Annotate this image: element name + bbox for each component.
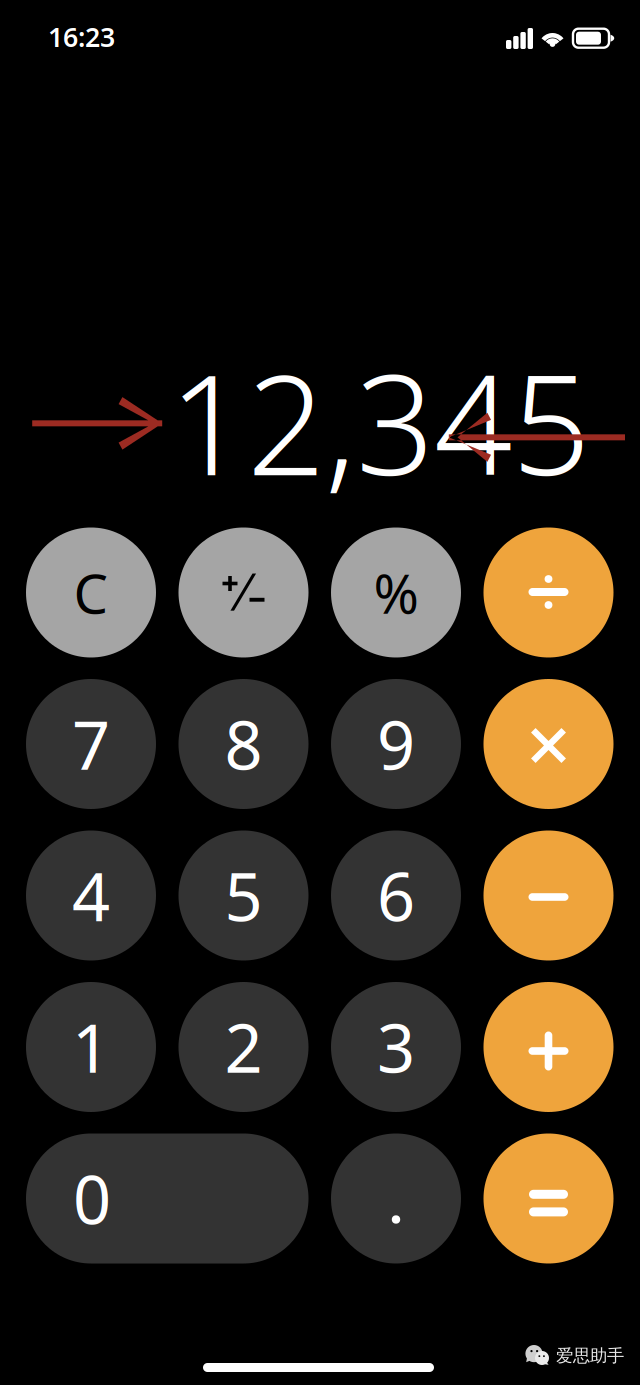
button[interactable]: 3: [331, 982, 461, 1112]
staticText: 1: [72, 1003, 110, 1091]
staticText: 3: [377, 1003, 415, 1091]
button[interactable]: Decimal point: [331, 1133, 461, 1263]
staticText: 4: [72, 851, 110, 940]
button[interactable]: 9: [331, 679, 461, 809]
staticText: 9: [377, 700, 415, 788]
button[interactable]: Minus: [483, 830, 613, 960]
button[interactable]: Clear: [26, 527, 156, 657]
button[interactable]: 2: [178, 982, 308, 1112]
button[interactable]: 0: [26, 1133, 308, 1263]
staticText: 7: [72, 700, 110, 788]
staticText: 爱思助手: [556, 1345, 624, 1366]
button[interactable]: Plus: [483, 982, 613, 1112]
staticText: 5: [224, 851, 262, 940]
staticText: C: [73, 556, 108, 629]
button[interactable]: Percent: [331, 527, 461, 657]
staticText: 16:23: [48, 19, 115, 54]
button[interactable]: Equals: [483, 1133, 613, 1263]
staticText: 8: [224, 700, 262, 788]
staticText: 0: [73, 1154, 111, 1243]
staticText: 12,345: [169, 331, 590, 513]
staticText: %: [373, 556, 418, 629]
button[interactable]: 5: [178, 830, 308, 960]
button[interactable]: 8: [178, 679, 308, 809]
button[interactable]: 6: [331, 830, 461, 960]
button[interactable]: Divide: [483, 527, 613, 657]
button[interactable]: 4: [26, 830, 156, 960]
staticText: 6: [377, 851, 415, 940]
button[interactable]: Plus minus: [178, 527, 308, 657]
staticText: 2: [224, 1003, 262, 1091]
button[interactable]: 1: [26, 982, 156, 1112]
button[interactable]: 7: [26, 679, 156, 809]
button[interactable]: Multiply: [483, 679, 613, 809]
